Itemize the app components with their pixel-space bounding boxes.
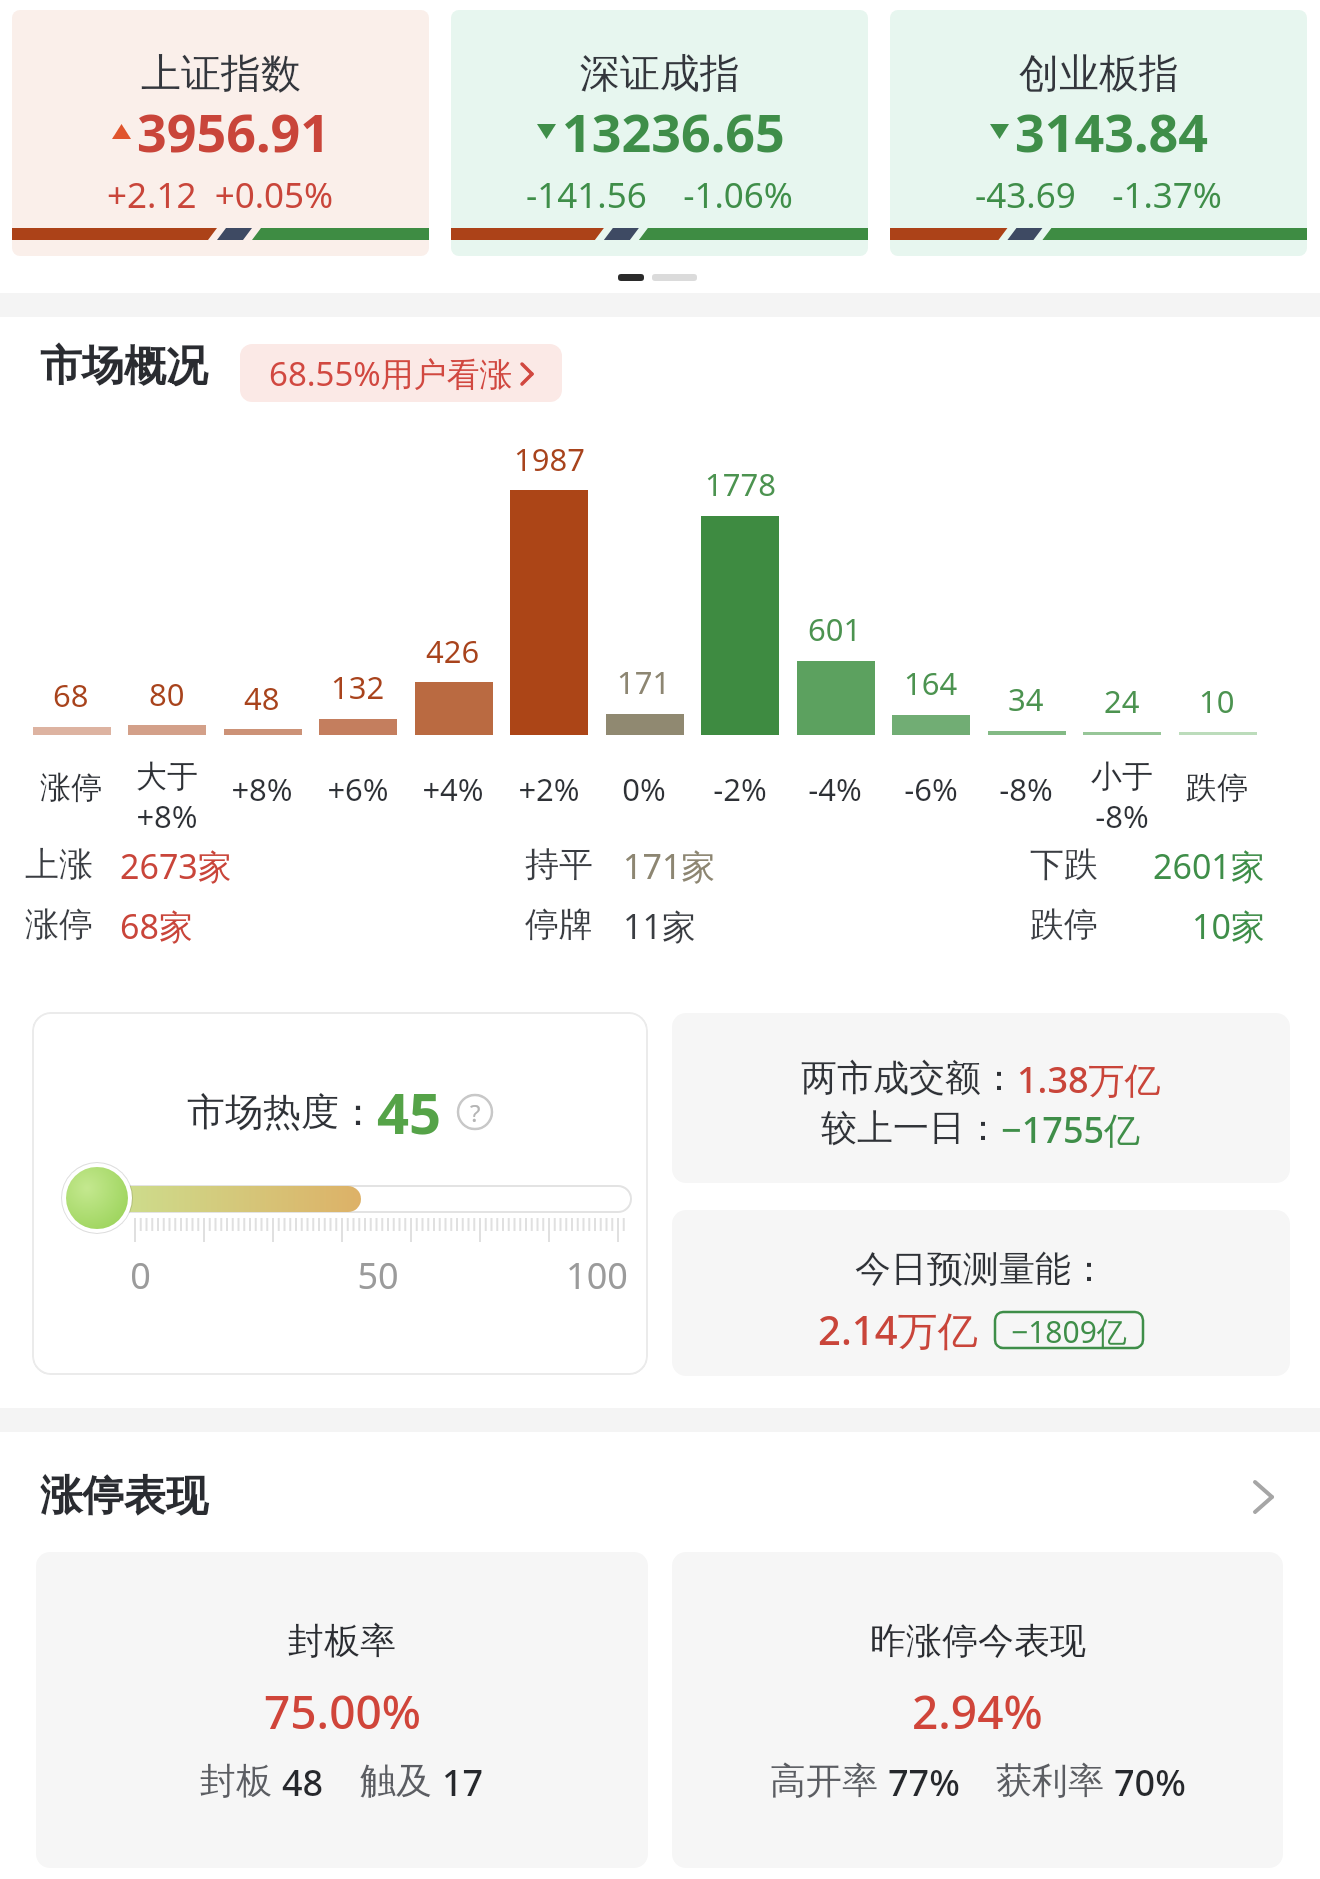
staticText: 获利率: [996, 1758, 1104, 1803]
staticText: 封板: [200, 1758, 272, 1803]
staticText: 市场热度：: [187, 1088, 377, 1136]
staticText: 426: [426, 630, 480, 672]
button[interactable]: 深证成指: [451, 10, 868, 256]
staticText: 75.00%: [264, 1680, 421, 1743]
button[interactable]: [1252, 1480, 1276, 1514]
button[interactable]: 上证指数: [12, 10, 429, 256]
button[interactable]: 创业板指: [890, 10, 1307, 256]
staticText: 11家: [623, 903, 696, 949]
staticText: 上证指数: [141, 48, 301, 98]
staticText: 1987: [514, 438, 585, 480]
staticText: 3956.91: [137, 96, 331, 167]
button[interactable]: 市场热度：: [32, 1012, 648, 1375]
staticText: +6%: [327, 768, 389, 810]
staticText: 45: [377, 1074, 442, 1150]
staticText: 50: [357, 1251, 399, 1300]
staticText: 今日预测量能：: [855, 1246, 1107, 1291]
staticText: 触及: [360, 1758, 432, 1803]
staticText: 深证成指: [580, 48, 740, 98]
staticText: +8%: [231, 768, 293, 810]
staticText: -141.56 -1.06%: [526, 171, 793, 219]
staticText: 较上一日：: [821, 1105, 1001, 1150]
staticText: 77%: [888, 1758, 960, 1807]
staticText: 市场概况: [40, 340, 208, 393]
staticText: +2%: [518, 768, 580, 810]
staticText: 两市成交额：: [801, 1055, 1017, 1100]
staticText: -2%: [713, 768, 767, 810]
staticText: 34: [1008, 678, 1044, 720]
staticText: 68: [53, 674, 89, 716]
staticText: 0%: [622, 768, 666, 810]
staticText: -6%: [904, 768, 958, 810]
staticText: 创业板指: [1019, 48, 1179, 98]
staticText: 持平: [525, 843, 593, 886]
button[interactable]: 封板率: [36, 1552, 648, 1868]
staticText: 68.55%用户看涨: [269, 351, 513, 396]
staticText: −1809亿: [1011, 1311, 1127, 1349]
staticText: 80: [149, 673, 185, 715]
staticText: 1778: [705, 463, 776, 505]
staticText: 2673家: [120, 843, 232, 889]
staticText: 1.38万亿: [1017, 1055, 1161, 1104]
staticText: 封板率: [288, 1618, 396, 1663]
staticText: 2.14万亿: [818, 1302, 978, 1357]
staticText: 10: [1199, 680, 1235, 722]
staticText: 100: [566, 1251, 628, 1300]
staticText: -8%: [999, 768, 1053, 810]
staticText: 3143.84: [1015, 96, 1209, 167]
button[interactable]: 两市成交额：: [672, 1013, 1290, 1183]
staticText: 2.94%: [912, 1680, 1043, 1743]
staticText: 171家: [623, 843, 716, 889]
staticText: +4%: [422, 768, 484, 810]
button[interactable]: 今日预测量能：: [672, 1210, 1290, 1376]
staticText: 132: [331, 666, 385, 708]
staticText: 0: [130, 1251, 151, 1300]
staticText: 涨停: [25, 903, 93, 946]
staticText: 10家: [1192, 903, 1265, 949]
staticText: 68家: [120, 903, 193, 949]
staticText: 昨涨停今表现: [870, 1618, 1086, 1663]
staticText: 601: [808, 608, 862, 650]
staticText: 跌停: [1186, 768, 1248, 807]
staticText: 48: [244, 677, 280, 719]
staticText: 上涨: [25, 843, 93, 886]
staticText: ?: [470, 1096, 481, 1129]
staticText: 17: [442, 1758, 484, 1807]
staticText: -43.69 -1.37%: [975, 171, 1222, 219]
staticText: 70%: [1114, 1758, 1186, 1807]
staticText: 2601家: [1153, 843, 1265, 889]
button[interactable]: 昨涨停今表现: [672, 1552, 1283, 1868]
staticText: 下跌: [1030, 843, 1098, 886]
staticText: 171: [617, 661, 671, 703]
staticText: +2.12 +0.05%: [107, 171, 334, 219]
staticText: 24: [1104, 680, 1140, 722]
staticText: 13236.65: [562, 96, 785, 167]
staticText: 小于 -8%: [1091, 757, 1153, 837]
staticText: 跌停: [1030, 903, 1098, 946]
staticText: 大于 +8%: [136, 757, 198, 837]
button[interactable]: 68.55%用户看涨: [240, 344, 562, 402]
staticText: 48: [282, 1758, 324, 1807]
staticText: 164: [904, 662, 958, 704]
staticText: 停牌: [525, 903, 593, 946]
staticText: −1755亿: [1001, 1105, 1141, 1154]
staticText: 涨停表现: [40, 1470, 208, 1523]
staticText: 涨停: [40, 768, 102, 807]
staticText: -4%: [808, 768, 862, 810]
staticText: 高开率: [770, 1758, 878, 1803]
